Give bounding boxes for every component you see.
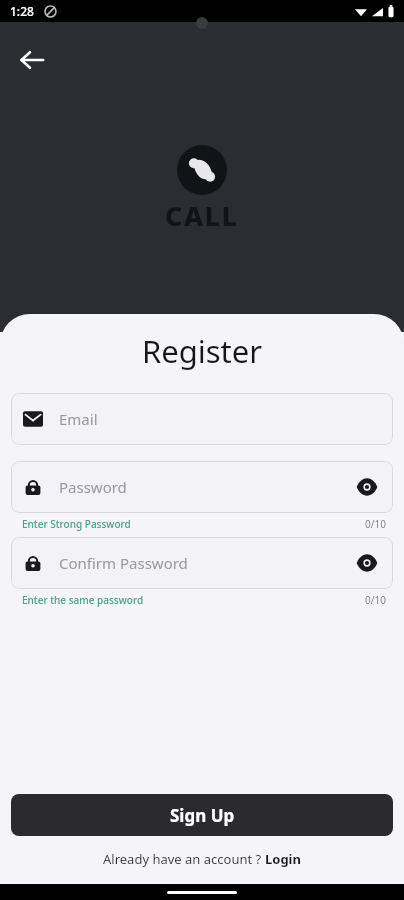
staticText: Password — [59, 477, 127, 497]
staticText: 0/10 — [365, 593, 386, 607]
staticText: 1:28 — [10, 3, 34, 19]
staticText: 0/10 — [365, 517, 386, 531]
staticText: Already have an account ? — [103, 850, 265, 868]
staticText: Confirm Password — [59, 553, 188, 573]
button[interactable]: Toggle password visibility — [353, 549, 381, 577]
button[interactable]: Already have an account ? — [0, 850, 404, 868]
staticText: CALL — [165, 197, 239, 234]
staticText: Login — [265, 850, 301, 868]
button[interactable]: Toggle password visibility — [353, 473, 381, 501]
staticText: Enter the same password — [22, 593, 144, 607]
button[interactable]: Email — [11, 393, 393, 445]
button[interactable]: Confirm Password — [11, 537, 393, 589]
staticText: Email — [59, 409, 98, 429]
button[interactable]: Sign Up — [11, 794, 393, 836]
staticText: Register — [0, 330, 404, 372]
staticText: Sign Up — [170, 804, 235, 827]
button[interactable]: Password — [11, 461, 393, 513]
button[interactable]: Back — [8, 36, 56, 84]
staticText: Enter Strong Password — [22, 517, 131, 531]
